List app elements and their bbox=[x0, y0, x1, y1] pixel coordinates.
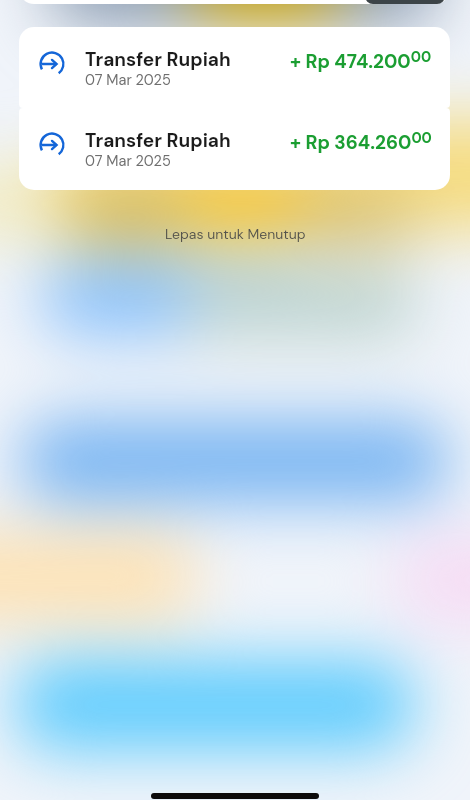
staticText: Lepas untuk Menutup bbox=[165, 225, 306, 243]
staticText: Transfer Rupiah bbox=[85, 128, 231, 153]
other: Transfer bbox=[40, 133, 64, 157]
button[interactable]: Transfer bbox=[19, 27, 450, 108]
staticText: + Rp 364.26000 bbox=[290, 129, 432, 155]
button[interactable]: Transfer bbox=[19, 108, 450, 189]
staticText: 07 Mar 2025 bbox=[85, 71, 171, 90]
staticText: + Rp 474.20000 bbox=[290, 48, 432, 74]
other: Transfer bbox=[40, 52, 64, 76]
staticText: 07 Mar 2025 bbox=[85, 152, 171, 171]
staticText: Transfer Rupiah bbox=[85, 47, 231, 72]
